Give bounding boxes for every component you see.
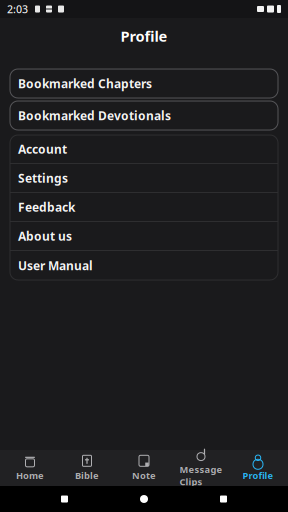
button[interactable]: Message Clips (172, 450, 229, 486)
button[interactable]: Home (129, 486, 159, 512)
button[interactable]: Back (49, 486, 79, 512)
staticText: Profile (120, 26, 167, 46)
button[interactable]: Bookmarked Chapters (10, 69, 278, 98)
staticText: About us (18, 228, 72, 244)
staticText: Settings (18, 170, 68, 186)
button[interactable]: User Manual (10, 251, 278, 280)
staticText: User Manual (18, 257, 93, 273)
staticText: Message Clips (179, 463, 222, 488)
button[interactable]: Feedback (10, 193, 278, 222)
staticText: Note (132, 469, 156, 482)
button[interactable]: Home (1, 450, 58, 486)
staticText: Profile (242, 469, 273, 482)
button[interactable]: Account (10, 135, 278, 164)
staticText: 2:03 (7, 2, 28, 16)
staticText: Feedback (18, 199, 75, 215)
staticText: Home (16, 469, 44, 482)
button[interactable]: Bible (58, 450, 115, 486)
staticText: Bookmarked Chapters (18, 75, 152, 91)
staticText: Bookmarked Devotionals (18, 107, 171, 123)
button[interactable]: Settings (10, 164, 278, 193)
button[interactable]: Bookmarked Devotionals (10, 101, 278, 130)
button[interactable]: Recent apps (208, 486, 238, 512)
staticText: Account (18, 141, 67, 157)
staticText: Bible (75, 469, 99, 482)
button[interactable]: Note (115, 450, 172, 486)
button[interactable]: Profile (229, 450, 286, 486)
button[interactable]: About us (10, 222, 278, 251)
